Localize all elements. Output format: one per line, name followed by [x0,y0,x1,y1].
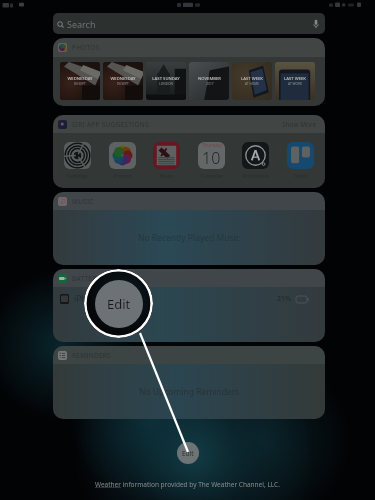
staticText: Edit [182,449,194,458]
button[interactable]: Trello [287,142,314,179]
staticText: PHOTOS [72,43,100,52]
staticText: Edit [107,295,131,313]
staticText: MUSIC [72,197,94,206]
staticText: IN SEPT [74,82,86,86]
staticText: Show More [282,120,317,129]
button[interactable]: Show More [282,120,317,129]
staticText: 10 [202,147,221,168]
button[interactable]: Edit [177,442,199,464]
staticText: iPhone [74,293,102,305]
staticText: Weather [95,480,121,489]
button[interactable]: Thursday [198,142,225,179]
staticText: 2017 [206,82,214,86]
staticText: NOVEMBER [198,76,221,82]
staticText: WEDNESDAY [110,76,136,82]
button[interactable]: Photos [109,142,136,179]
button[interactable]: NOVEMBER [189,62,229,100]
staticText: AT HOME [245,82,259,86]
other: Dictate [313,19,319,29]
button[interactable]: WEDNESDAY [103,62,143,100]
button[interactable]: WEDNESDAY [60,62,100,100]
staticText: information provided by The Weather Chan… [121,480,280,489]
button[interactable]: LAST SUNDAY [146,62,186,100]
staticText: LAST WEEK [241,76,263,82]
staticText: Search [67,18,96,30]
button[interactable]: Edit [95,280,143,328]
button[interactable]: Settings [64,142,91,179]
staticText: SIRI APP SUGGESTIONS [72,120,149,129]
button[interactable]: Annotable [242,142,269,179]
staticText: AT WORK [288,82,302,86]
staticText: No Recently Played Music [138,232,240,244]
staticText: 21% [277,294,291,304]
staticText: LONDON [159,82,173,86]
button[interactable]: News [153,142,180,179]
staticText: LAST SUNDAY [152,76,180,82]
staticText: BATTERIES [72,274,107,283]
staticText: IN SEPT [117,82,129,86]
staticText: No Upcoming Reminders [139,386,240,398]
button[interactable]: Search [53,13,325,34]
staticText: REMINDERS [72,351,111,360]
button[interactable]: LAST WEEK [232,62,272,100]
staticText: Thursday [202,142,222,148]
staticText: LAST WEEK [284,76,306,82]
staticText: WEDNESDAY [67,76,93,82]
button[interactable]: LAST WEEK [275,62,315,100]
